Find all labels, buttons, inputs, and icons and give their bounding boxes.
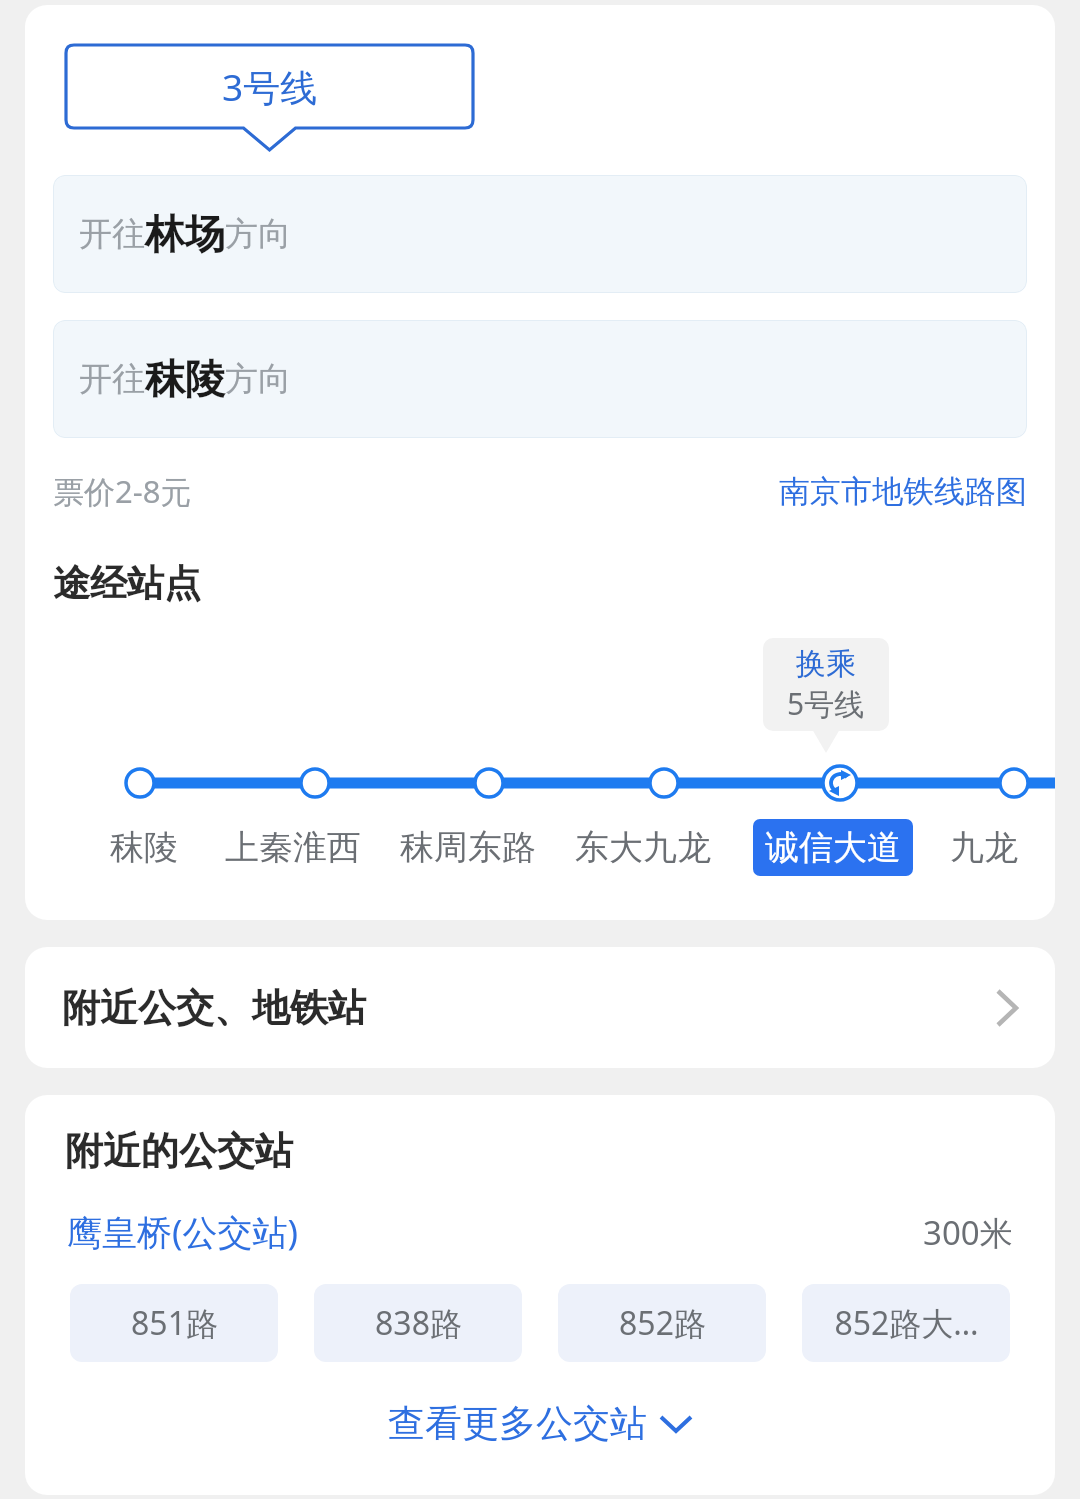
staticText: 开往 <box>79 358 145 400</box>
staticText: 851路 <box>131 1301 218 1345</box>
staticText: 上秦淮西 <box>225 826 361 869</box>
staticText: 秣陵 <box>110 826 178 869</box>
button[interactable]: 838路 <box>314 1284 522 1362</box>
staticText: 林场 <box>145 209 225 259</box>
button[interactable]: 诚信大道 <box>753 819 913 876</box>
staticText: 附近的公交站 <box>65 1127 293 1175</box>
staticText: 附近公交、地铁站 <box>62 984 366 1032</box>
staticText: 852路大… <box>834 1301 979 1345</box>
button[interactable]: 3号线 <box>66 45 473 128</box>
staticText: 票价2-8元 <box>53 470 192 512</box>
staticText: 方向 <box>225 213 291 255</box>
staticText: 300米 <box>923 1210 1013 1255</box>
staticText: 查看更多公交站 <box>388 1400 647 1447</box>
staticText: 852路 <box>619 1301 706 1345</box>
staticText: 开往 <box>79 213 145 255</box>
button[interactable]: 秣陵 <box>110 826 178 869</box>
button[interactable]: 852路 <box>558 1284 766 1362</box>
staticText: 途经站点 <box>53 560 201 607</box>
button[interactable]: 九龙 <box>950 826 1018 869</box>
button[interactable]: 852路大… <box>802 1284 1010 1362</box>
button[interactable]: 秣周东路 <box>400 826 536 869</box>
button[interactable]: 鹰皇桥(公交站) <box>67 1208 299 1256</box>
staticText: 方向 <box>225 358 291 400</box>
button[interactable]: 开往 <box>53 175 1027 293</box>
button[interactable]: 开往 <box>53 320 1027 438</box>
staticText: 秣陵 <box>145 354 225 404</box>
staticText: 秣周东路 <box>400 826 536 869</box>
staticText: 诚信大道 <box>765 826 901 869</box>
staticText: 换乘 <box>796 645 856 683</box>
button[interactable]: 上秦淮西 <box>225 826 361 869</box>
staticText: 5号线 <box>787 683 865 724</box>
button[interactable]: 东大九龙 <box>575 826 711 869</box>
staticText: 南京市地铁线路图 <box>779 472 1027 511</box>
staticText: 九龙 <box>950 826 1018 869</box>
staticText: 838路 <box>375 1301 462 1345</box>
staticText: 鹰皇桥(公交站) <box>67 1208 299 1256</box>
staticText: 东大九龙 <box>575 826 711 869</box>
button[interactable]: 附近公交、地铁站 <box>25 947 1055 1068</box>
button[interactable]: 851路 <box>70 1284 278 1362</box>
button[interactable]: 查看更多公交站 <box>25 1400 1055 1447</box>
staticText: 3号线 <box>222 61 318 112</box>
button[interactable]: 南京市地铁线路图 <box>779 472 1027 511</box>
